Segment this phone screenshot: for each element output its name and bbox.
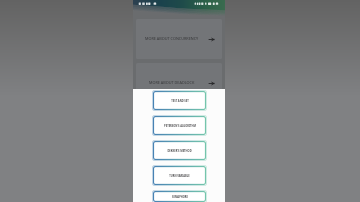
staticText: TURN VARIABLE xyxy=(169,174,190,178)
other: Open MORE ABOUT CONCURRENCY xyxy=(209,37,214,42)
staticText: MORE ABOUT DEADLOCK xyxy=(149,80,195,85)
button[interactable]: MORE ABOUT CONCURRENCY xyxy=(136,19,222,59)
other: Open MORE ABOUT DEADLOCK xyxy=(209,81,214,86)
staticText: TEST AND SET xyxy=(171,99,189,103)
staticText: PETERSON'S ALGORITHM xyxy=(164,124,196,128)
staticText: SEMAPHORE xyxy=(172,195,188,199)
button[interactable]: DEKKER'S METHOD xyxy=(153,141,206,160)
staticText: DEKKER'S METHOD xyxy=(167,149,192,153)
button[interactable]: MORE ABOUT DEADLOCK xyxy=(136,63,222,103)
button[interactable]: TURN VARIABLE xyxy=(153,166,206,185)
button[interactable]: SEMAPHORE xyxy=(153,191,206,202)
button[interactable]: TEST AND SET xyxy=(153,91,206,110)
staticText: MORE ABOUT CONCURRENCY xyxy=(145,36,199,41)
button[interactable]: PETERSON'S ALGORITHM xyxy=(153,116,206,135)
